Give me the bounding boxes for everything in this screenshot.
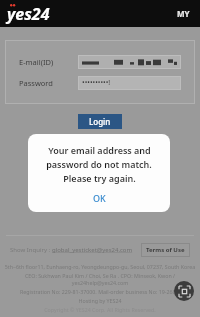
button[interactable]: global_yesticket@yes24.com: [52, 246, 133, 254]
button[interactable]: [78, 55, 181, 69]
staticText: Password: [19, 78, 53, 88]
button[interactable]: yes24: [7, 3, 50, 25]
staticText: yes24: [7, 3, 50, 25]
staticText: Your email address and: [48, 144, 151, 156]
staticText: Hosting by YES24: [0, 297, 200, 304]
staticText: global_yesticket@yes24.com: [52, 246, 133, 254]
button[interactable]: Terms of Use: [141, 243, 190, 257]
staticText: E-mail(ID): [19, 57, 54, 67]
staticText: password do not match.: [46, 158, 152, 170]
staticText: OK: [93, 192, 106, 204]
staticText: Login: [89, 116, 111, 127]
button[interactable]: ••••••••••!: [78, 76, 181, 90]
staticText: 5th~6th floor11, Eunhaeng-ro, Yeongdeung…: [4, 263, 196, 270]
staticText: ••••••••••!: [82, 78, 111, 88]
staticText: Show Inquiry :: [10, 246, 52, 254]
staticText: Terms of Use: [146, 246, 185, 254]
button[interactable]: Scan: [174, 281, 194, 301]
button[interactable]: MY: [175, 6, 192, 21]
staticText: CEO: Sukhwan Paul Kim / Choi, Se Ra . CP…: [4, 272, 196, 286]
button[interactable]: Login: [78, 114, 122, 129]
staticText: Registration No: 229-81-37000. Mail-orde…: [4, 288, 196, 295]
button[interactable]: OK: [28, 184, 170, 212]
staticText: MY: [177, 8, 190, 19]
staticText: Please try again.: [63, 172, 136, 184]
